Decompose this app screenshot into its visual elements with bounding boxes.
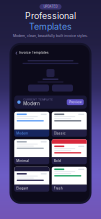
staticText: Elegant [16,186,28,190]
button[interactable]: Minimal [14,139,49,164]
staticText: Classic [54,131,66,135]
button[interactable]: Elegant [14,167,49,192]
button[interactable]: Fresh [52,167,87,192]
staticText: Professional [25,10,76,21]
button[interactable]: Classic [52,112,87,137]
staticText: CURRENT TEMPLATE [23,98,53,101]
staticText: Minimal [16,159,29,163]
staticText: Bold [54,159,61,163]
staticText: UPDATED [43,5,57,8]
staticText: Fresh [54,186,63,190]
staticText: Templates [29,21,72,32]
button[interactable]: Modern [14,112,49,137]
staticText: Modern [23,101,40,106]
button[interactable] [28,84,49,91]
button[interactable] [52,84,73,91]
staticText: Preview [69,100,81,104]
staticText: Modern, clean, beautifully built invoice… [13,34,88,38]
staticText: Modern [16,131,28,135]
button[interactable]: Preview [67,99,84,105]
button[interactable]: Bold [52,139,87,164]
staticText: Invoice Templates [19,50,49,55]
staticText: ‹ [15,49,17,56]
